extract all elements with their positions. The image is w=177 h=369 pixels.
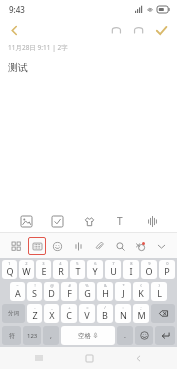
button[interactable]: :: [115, 304, 131, 323]
staticText: H: [102, 287, 109, 299]
button[interactable]: ,: [43, 326, 59, 345]
button[interactable]: *: [115, 282, 131, 301]
button[interactable]: Voice: [69, 237, 87, 255]
button[interactable]: Done: [149, 18, 173, 42]
button[interactable]: &: [97, 282, 113, 301]
button[interactable]: Undo: [105, 19, 127, 41]
button[interactable]: /: [97, 304, 113, 323]
staticText: &: [104, 283, 107, 288]
staticText: Q: [6, 265, 14, 277]
button[interactable]: 0: [159, 260, 175, 279]
button[interactable]: (: [133, 282, 149, 301]
staticText: Z: [32, 309, 38, 321]
button[interactable]: Emoji: [135, 326, 153, 345]
staticText: 6: [94, 261, 97, 266]
button[interactable]: #: [61, 282, 77, 301]
button[interactable]: Emoji: [48, 237, 66, 255]
staticText: @: [50, 283, 54, 288]
staticText: Y: [92, 265, 98, 277]
button[interactable]: Text format: [108, 211, 132, 231]
staticText: 4: [59, 261, 62, 266]
button[interactable]: 123: [23, 326, 41, 345]
staticText: *: [122, 283, 125, 288]
button[interactable]: Home: [78, 347, 100, 369]
button[interactable]: 9: [141, 260, 157, 279]
button[interactable]: ;: [133, 304, 149, 323]
staticText: A: [15, 287, 21, 299]
staticText: D: [48, 287, 55, 299]
button[interactable]: 5: [70, 260, 85, 279]
staticText: J: [122, 287, 125, 299]
button[interactable]: %: [79, 282, 95, 301]
button[interactable]: Voice input: [140, 211, 164, 231]
button[interactable]: ): [151, 282, 167, 301]
staticText: !: [34, 283, 36, 288]
staticText: 空格: [78, 332, 91, 340]
staticText: G: [84, 287, 91, 299]
button[interactable]: @: [44, 282, 59, 301]
button[interactable]: Insert image: [14, 211, 38, 231]
staticText: /: [104, 305, 106, 310]
staticText: T: [75, 265, 81, 277]
staticText: 2: [25, 261, 28, 266]
button[interactable]: Keyboard: [28, 237, 46, 255]
button[interactable]: Checklist: [45, 211, 69, 231]
staticText: B: [102, 309, 108, 321]
button[interactable]: Translate: [131, 237, 149, 255]
staticText: K: [138, 287, 144, 299]
staticText: 0: [166, 261, 169, 266]
staticText: N: [120, 309, 127, 321]
button[interactable]: Collapse: [152, 237, 170, 255]
button[interactable]: 6: [87, 260, 103, 279]
button[interactable]: !: [27, 282, 42, 301]
staticText: I: [129, 265, 133, 277]
button[interactable]: +: [61, 304, 77, 323]
staticText: X: [49, 309, 55, 321]
button[interactable]: Back: [127, 347, 149, 369]
staticText: +: [68, 305, 71, 310]
button[interactable]: Clipboard: [90, 237, 108, 255]
button[interactable]: =: [79, 304, 95, 323]
button[interactable]: 1: [2, 260, 17, 279]
staticText: _: [51, 305, 53, 310]
button[interactable]: Skin: [77, 211, 101, 231]
staticText: ;: [140, 305, 142, 310]
button[interactable]: Search: [111, 237, 129, 255]
button[interactable]: ~: [10, 282, 25, 301]
button[interactable]: Backspace: [151, 304, 175, 323]
staticText: 11月28日 9:11 | 2字: [8, 43, 68, 52]
staticText: W: [22, 265, 31, 277]
button[interactable]: -: [27, 304, 42, 323]
staticText: ~: [16, 283, 19, 288]
button[interactable]: 3: [36, 260, 51, 279]
staticText: 分词: [8, 310, 19, 317]
staticText: .: [124, 331, 126, 341]
staticText: %: [85, 283, 89, 288]
staticText: 符: [9, 332, 15, 340]
staticText: 5: [76, 261, 79, 266]
staticText: T: [117, 214, 123, 228]
staticText: 9: [148, 261, 151, 266]
button[interactable]: 8: [123, 260, 139, 279]
button[interactable]: Recents: [28, 347, 50, 369]
staticText: -: [34, 305, 36, 310]
staticText: 123: [27, 332, 38, 340]
staticText: ): [158, 283, 160, 288]
button[interactable]: 符: [2, 326, 21, 345]
staticText: C: [66, 309, 72, 321]
button[interactable]: 分词: [2, 304, 25, 323]
staticText: L: [157, 287, 162, 299]
button[interactable]: 4: [53, 260, 68, 279]
button[interactable]: .: [117, 326, 133, 345]
button[interactable]: _: [44, 304, 59, 323]
button[interactable]: Back: [3, 19, 25, 41]
button[interactable]: 2: [19, 260, 34, 279]
button[interactable]: 7: [105, 260, 121, 279]
staticText: 1: [8, 261, 11, 266]
button[interactable]: Redo: [127, 19, 149, 41]
button[interactable]: Apps: [7, 237, 25, 255]
button[interactable]: Enter: [155, 326, 175, 345]
staticText: :: [122, 305, 124, 310]
staticText: R: [58, 265, 64, 277]
button[interactable]: 空格: [61, 326, 115, 345]
